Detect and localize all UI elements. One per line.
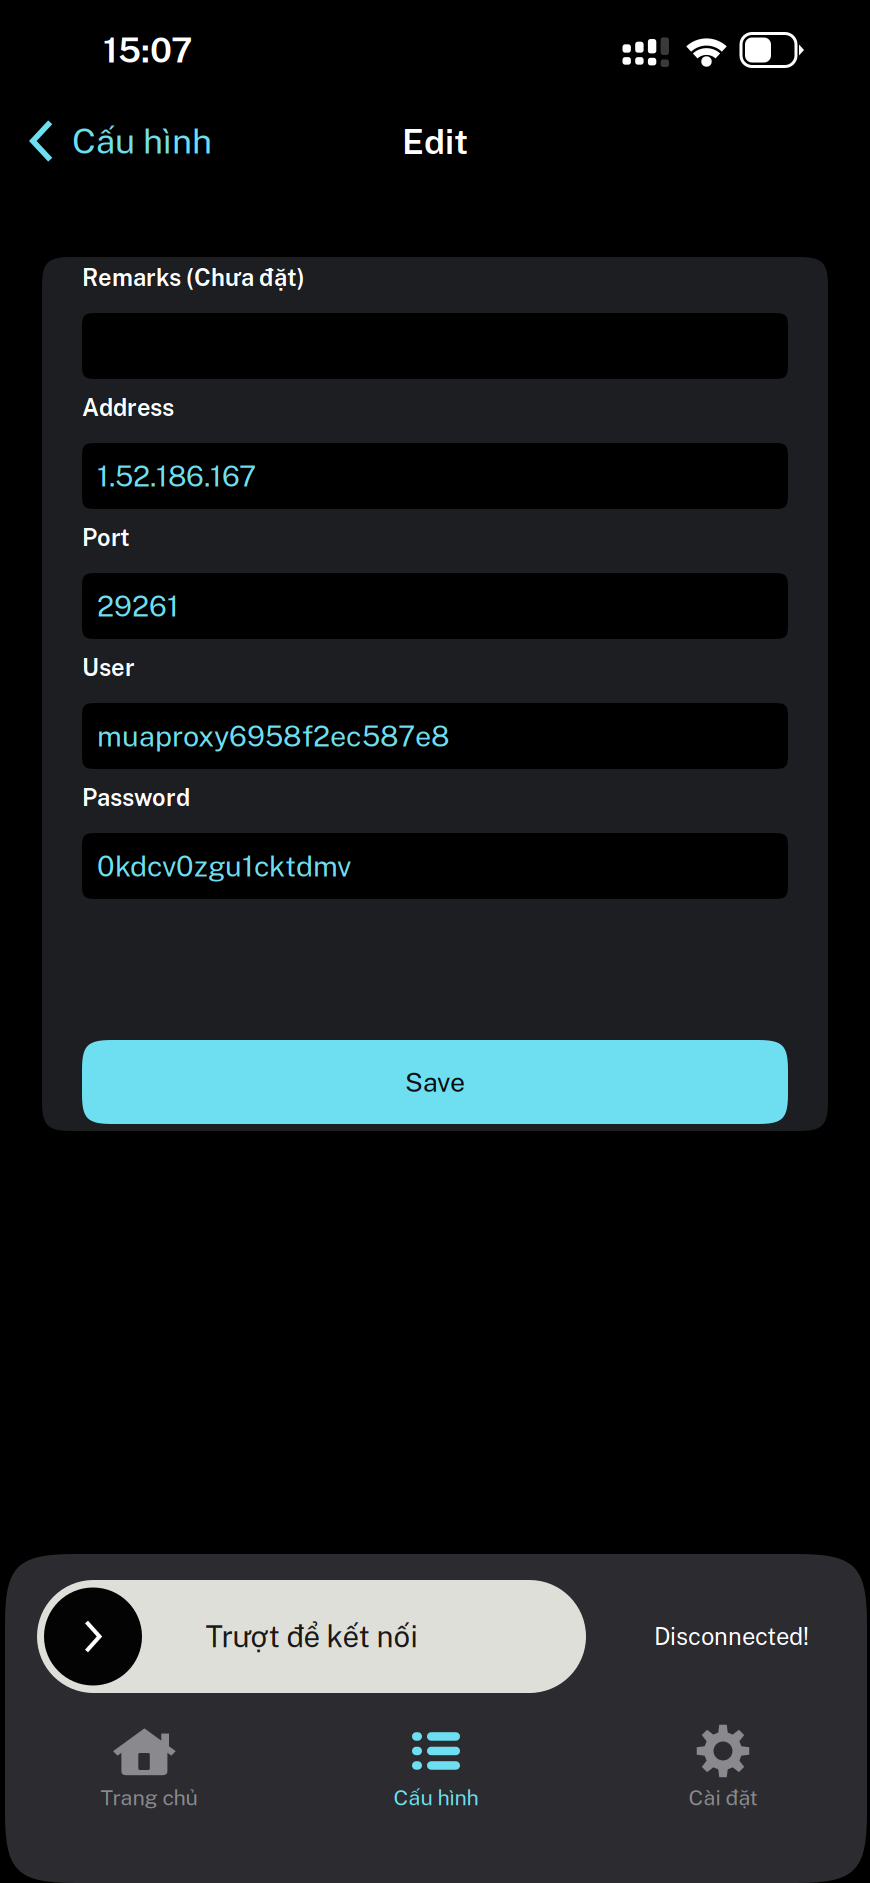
button[interactable]: Save [82,1040,788,1124]
staticText: Save [405,1066,465,1098]
staticText: Port [82,524,130,551]
staticText: Disconnected! [654,1623,809,1650]
staticText: Address [82,394,174,421]
button[interactable]: Trượt để kết nối [37,1580,586,1693]
staticText: 15:07 [103,30,192,70]
staticText: 0kdcv0zgu1cktdmv [97,849,351,883]
staticText: 1.52.186.167 [97,459,256,493]
staticText: Cài đặt [688,1785,757,1810]
staticText: 29261 [97,589,179,623]
staticText: Edit [402,121,468,162]
button[interactable]: Cài đặt [579,1717,866,1812]
staticText: Cấu hình [393,1785,478,1810]
staticText: Cấu hình [72,121,212,161]
staticText: muaproxy6958f2ec587e8 [97,719,450,753]
staticText: Trượt để kết nối [205,1619,417,1654]
staticText: Remarks (Chưa đặt) [82,264,305,291]
button[interactable]: Trang chủ [5,1717,292,1812]
staticText: User [82,654,135,681]
button[interactable]: Cấu hình [292,1717,579,1812]
staticText: Password [82,784,190,811]
staticText: Trang chủ [100,1785,197,1810]
button[interactable]: Cấu hình [0,100,226,182]
